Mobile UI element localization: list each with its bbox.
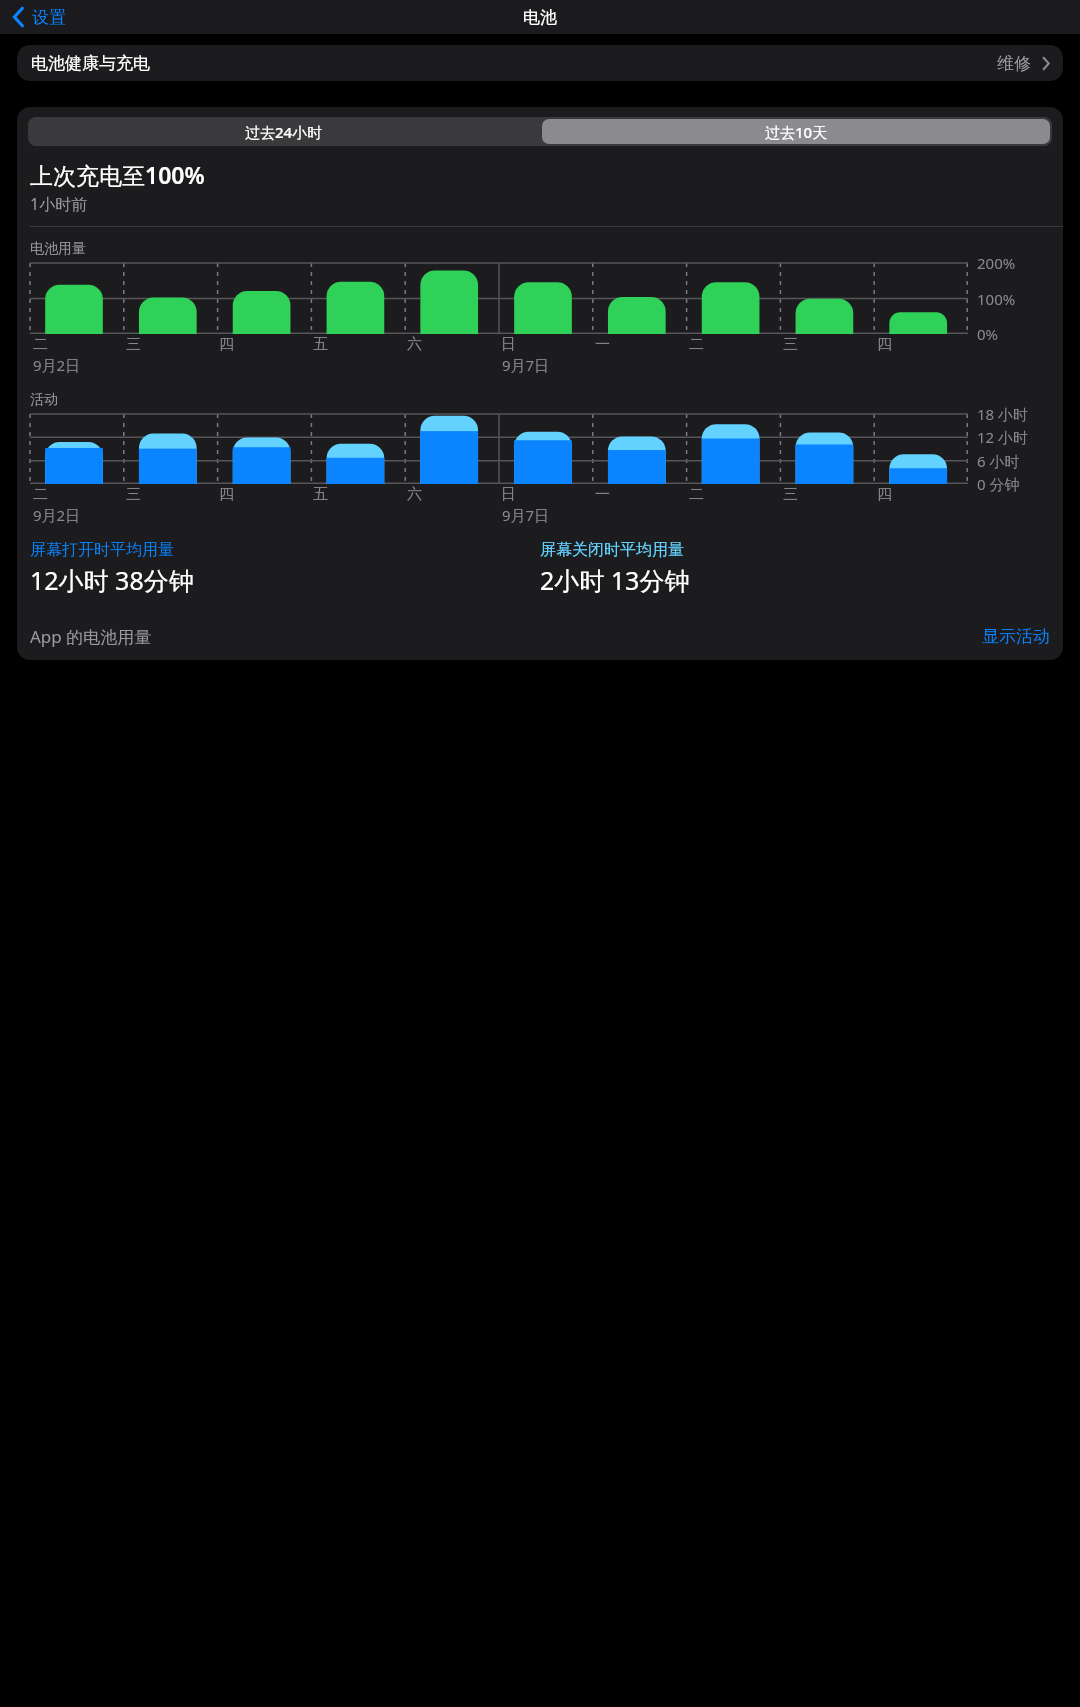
staticText: 过去10天 [765,122,828,142]
staticText: 2小时 13分钟 [540,563,690,597]
staticText: 1小时前 [30,193,88,215]
staticText: 9月2日 [33,505,81,525]
staticText: 过去24小时 [245,122,323,142]
staticText: 200% [977,253,1016,273]
button[interactable]: 设置 [6,2,72,32]
staticText: 0% [977,324,999,344]
staticText: 0 分钟 [977,474,1020,494]
staticText: 五 [313,485,328,504]
staticText: 四 [219,485,234,504]
button[interactable]: 显示活动 [982,626,1050,647]
staticText: 活动 [30,391,58,409]
staticText: 三 [126,335,141,354]
staticText: 一 [595,485,610,504]
staticText: 显示活动 [982,626,1050,647]
staticText: 6 小时 [977,451,1020,471]
staticText: App 的电池用量 [30,625,152,648]
staticText: 设置 [32,7,66,28]
staticText: 屏幕打开时平均用量 [30,540,174,560]
staticText: 18 小时 [977,404,1029,424]
staticText: 电池 [523,7,557,28]
staticText: 日 [501,335,516,354]
staticText: 四 [877,485,892,504]
staticText: 12小时 38分钟 [30,563,194,597]
button[interactable]: 过去24小时 [28,117,540,146]
staticText: 100% [977,289,1016,309]
button[interactable]: 电池健康与充电 [17,45,1063,81]
staticText: 二 [33,335,48,354]
staticText: 二 [689,485,704,504]
staticText: 三 [783,335,798,354]
staticText: 一 [595,335,610,354]
staticText: 二 [33,485,48,504]
staticText: 二 [689,335,704,354]
staticText: 屏幕关闭时平均用量 [540,540,684,560]
staticText: 电池用量 [30,240,86,258]
staticText: 五 [313,335,328,354]
staticText: 电池健康与充电 [31,53,150,74]
staticText: 三 [783,485,798,504]
button[interactable]: 过去10天 [542,119,1050,144]
staticText: 9月2日 [33,355,81,375]
staticText: 日 [501,485,516,504]
staticText: 12 小时 [977,427,1029,447]
staticText: 9月7日 [502,505,550,525]
staticText: 四 [877,335,892,354]
staticText: 六 [407,485,422,504]
staticText: 三 [126,485,141,504]
staticText: 六 [407,335,422,354]
staticText: 维修 [997,53,1031,74]
staticText: 9月7日 [502,355,550,375]
staticText: 四 [219,335,234,354]
staticText: 上次充电至100% [30,159,205,190]
